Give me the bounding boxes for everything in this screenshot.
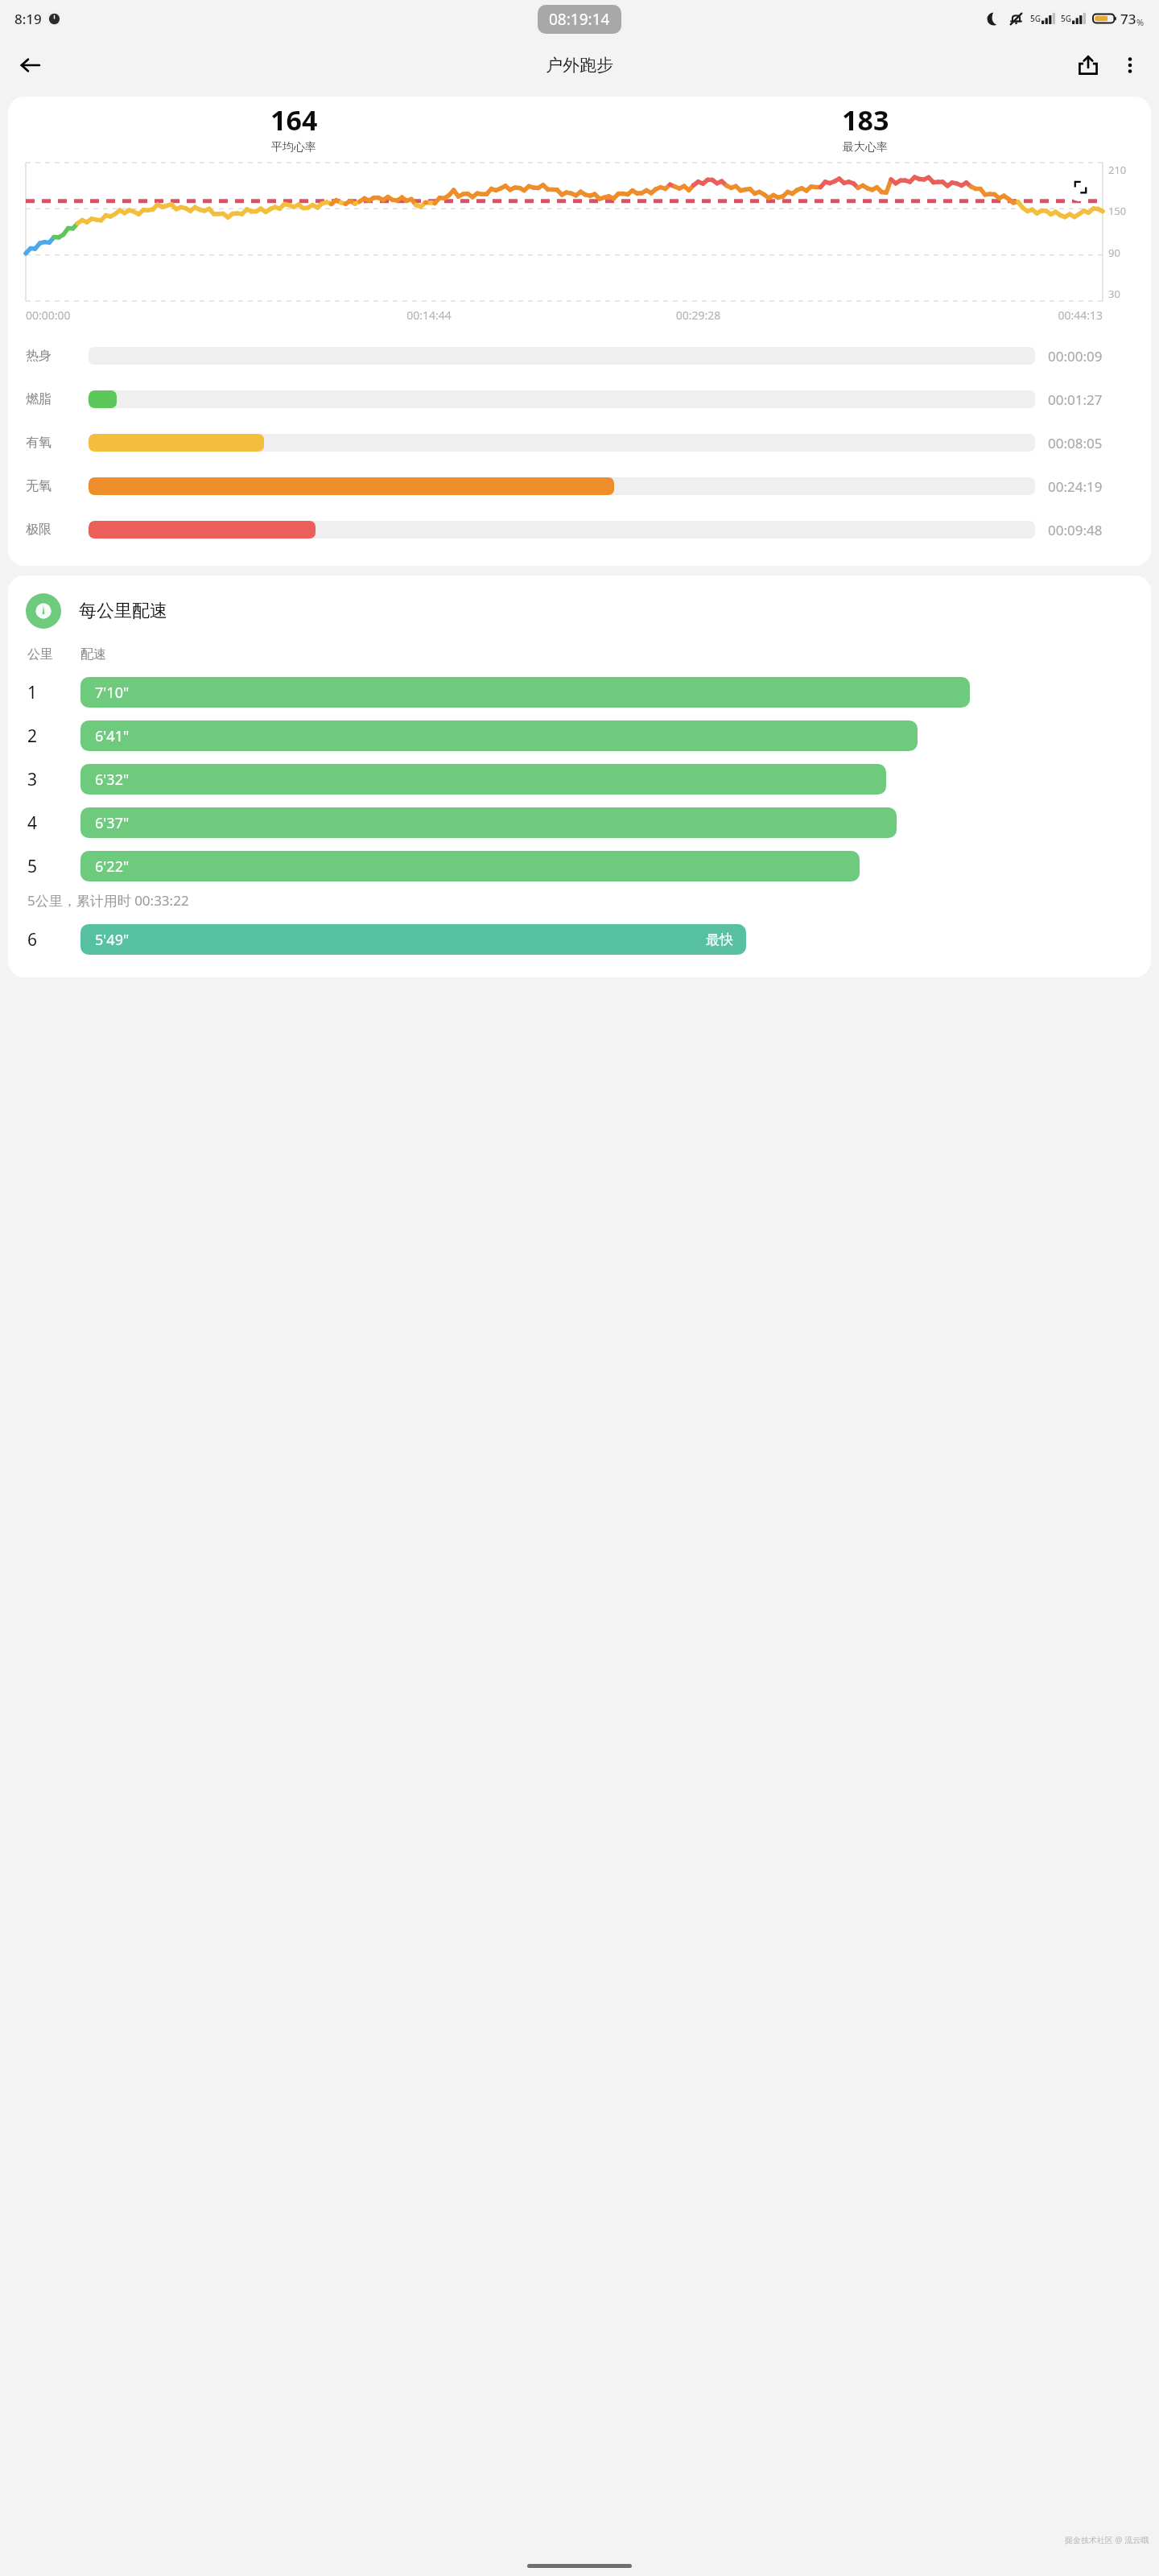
staticText: 210 — [1108, 163, 1127, 177]
button[interactable]: 6 — [27, 918, 1133, 961]
staticText: 00:24:19 — [1048, 477, 1133, 496]
button[interactable]: 燃脂 — [26, 378, 1133, 421]
staticText: 00:08:05 — [1048, 434, 1133, 452]
staticText: 最大心率 — [843, 140, 888, 155]
staticText: 73 — [1120, 10, 1136, 28]
staticText: 1 — [27, 681, 61, 704]
staticText: 00:00:00 — [26, 308, 295, 323]
staticText: 5G — [1030, 13, 1041, 24]
button[interactable]: 热身 — [26, 334, 1133, 378]
staticText: 6'37" — [95, 813, 130, 833]
button[interactable]: 极限 — [26, 508, 1133, 551]
staticText: 5'49" — [95, 930, 130, 950]
staticText: 00:44:13 — [833, 308, 1103, 323]
staticText: 6'32" — [95, 770, 130, 790]
staticText: 08:19:14 — [549, 9, 610, 30]
staticText: 公里 — [27, 646, 80, 663]
button[interactable]: 无氧 — [26, 464, 1133, 508]
staticText: 燃脂 — [26, 391, 76, 407]
staticText: 7'10" — [95, 683, 130, 703]
staticText: 6'41" — [95, 726, 130, 746]
staticText: 极限 — [26, 522, 76, 538]
button[interactable]: 每公里配速 — [26, 593, 167, 629]
staticText: 5G — [1061, 13, 1071, 24]
staticText: 6'22" — [95, 857, 130, 877]
staticText: 150 — [1108, 204, 1127, 218]
staticText: 00:29:28 — [563, 308, 833, 323]
staticText: 00:01:27 — [1048, 390, 1133, 409]
staticText: 90 — [1108, 246, 1120, 260]
staticText: 配速 — [80, 646, 106, 663]
staticText: 热身 — [26, 348, 76, 364]
staticText: 6 — [27, 928, 61, 952]
staticText: 户外跑步 — [546, 55, 613, 76]
button[interactable]: 1 — [27, 671, 1133, 714]
staticText: % — [1136, 16, 1145, 28]
staticText: 掘金技术社区 @ 流云哦 — [1065, 2534, 1149, 2545]
staticText: 00:00:09 — [1048, 347, 1133, 365]
staticText: 5公里，累计用时 00:33:22 — [27, 891, 189, 910]
button[interactable]: Back — [10, 44, 52, 86]
button[interactable]: 有氧 — [26, 421, 1133, 464]
staticText: 183 — [842, 101, 889, 138]
button[interactable]: 4 — [27, 801, 1133, 844]
staticText: 164 — [270, 101, 318, 138]
button[interactable]: Share — [1067, 44, 1109, 86]
button[interactable]: Expand chart — [1066, 172, 1095, 201]
staticText: 2 — [27, 724, 61, 748]
button[interactable]: 3 — [27, 758, 1133, 801]
staticText: 最快 — [706, 931, 733, 948]
staticText: 3 — [27, 768, 61, 791]
staticText: 00:14:44 — [295, 308, 563, 323]
staticText: 有氧 — [26, 435, 76, 451]
staticText: 5 — [27, 855, 61, 878]
staticText: 00:09:48 — [1048, 521, 1133, 539]
button[interactable]: More options — [1109, 44, 1151, 86]
staticText: 8:19 — [14, 10, 42, 28]
staticText: 无氧 — [26, 478, 76, 494]
button[interactable]: 5 — [27, 844, 1133, 888]
staticText: 平均心率 — [271, 140, 316, 155]
button[interactable]: 2 — [27, 714, 1133, 758]
staticText: 30 — [1108, 287, 1120, 301]
staticText: 4 — [27, 811, 61, 835]
staticText: 每公里配速 — [79, 600, 167, 622]
